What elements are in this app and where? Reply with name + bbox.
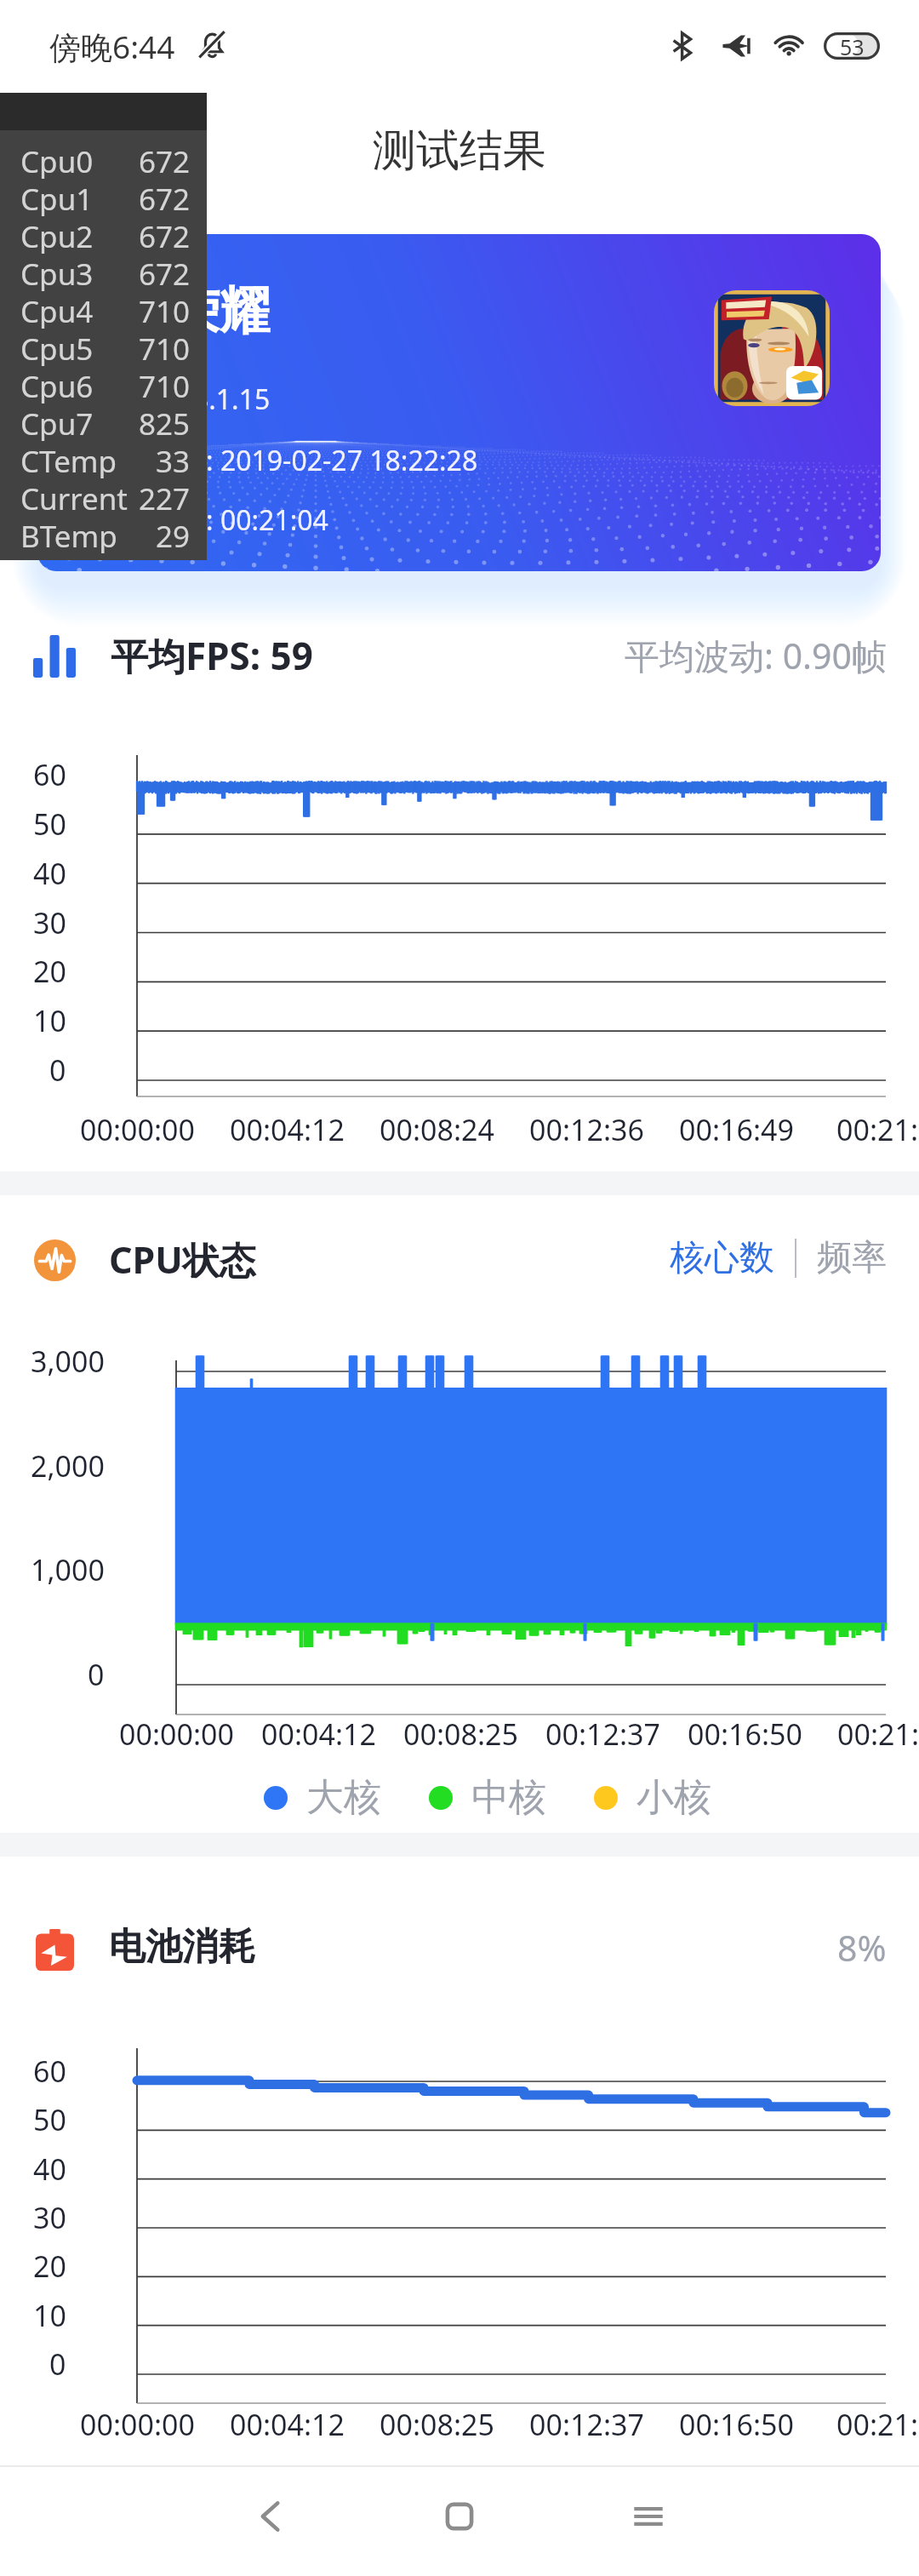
staticText: 00:08:25	[380, 2405, 494, 2444]
staticText: BTemp	[20, 516, 117, 553]
staticText: 平均波动: 0.90帧	[625, 632, 887, 679]
staticText: 29	[156, 516, 191, 553]
staticText: Cpu2	[20, 216, 94, 254]
staticText: 电池消耗	[109, 1924, 255, 1970]
staticText: 00:04:12	[230, 2405, 345, 2444]
staticText: 50	[33, 804, 66, 844]
staticText: 小核	[636, 1774, 711, 1821]
button[interactable]: 中核	[429, 1774, 546, 1821]
staticText: Current	[20, 478, 128, 516]
staticText: 00:04:12	[261, 1714, 376, 1754]
staticText: CPU状态	[109, 1234, 256, 1285]
staticText: 00:16:50	[688, 1714, 802, 1754]
staticText: 672	[139, 179, 191, 216]
staticText: 00:12:36	[529, 1110, 644, 1149]
staticText: 227	[139, 478, 191, 516]
staticText: 10	[33, 2296, 66, 2335]
staticText: 00:16:49	[679, 1110, 794, 1149]
staticText: 30	[33, 2198, 66, 2237]
button[interactable]: Recent apps	[597, 2465, 699, 2567]
staticText: 测试时长: 00:21:04	[97, 501, 328, 539]
staticText: 672	[139, 216, 191, 254]
staticText: 00:16:50	[679, 2405, 794, 2444]
staticText: 版本号: 3.1.15	[97, 381, 271, 418]
button[interactable]: 小核	[594, 1774, 711, 1821]
staticText: 频率	[817, 1236, 887, 1280]
staticText: 00:04:12	[230, 1110, 345, 1149]
staticText: 平均FPS: 59	[111, 630, 313, 681]
staticText: 20	[33, 2247, 66, 2286]
staticText: 0	[88, 1655, 105, 1694]
staticText: 核心数	[670, 1236, 774, 1280]
staticText: 测试结果	[373, 123, 546, 178]
staticText: 20	[33, 952, 66, 991]
staticText: 00:00:00	[80, 1110, 195, 1149]
staticText: 王者荣耀	[66, 279, 271, 344]
staticText: 30	[33, 903, 66, 942]
staticText: 傍晚6:44	[49, 25, 175, 68]
staticText: 40	[33, 854, 66, 893]
staticText: Cpu7	[20, 404, 94, 441]
staticText: Cpu6	[20, 366, 94, 404]
button[interactable]: 核心数	[670, 1236, 774, 1280]
staticText: 3,000	[31, 1342, 105, 1381]
staticText: 1,000	[31, 1550, 105, 1589]
staticText: 00:00:00	[80, 2405, 195, 2444]
staticText: 00:12:37	[529, 2405, 644, 2444]
staticText: 710	[139, 366, 191, 404]
staticText: 710	[139, 291, 191, 329]
staticText: 60	[33, 2052, 66, 2091]
staticText: 50	[33, 2100, 66, 2139]
staticText: 40	[33, 2150, 66, 2189]
staticText: CTemp	[20, 441, 117, 478]
staticText: Cpu0	[20, 141, 94, 179]
staticText: 00:08:25	[403, 1714, 518, 1754]
staticText: Cpu4	[20, 291, 94, 329]
staticText: 672	[139, 254, 191, 291]
staticText: Cpu5	[20, 329, 94, 366]
staticText: 大核	[306, 1774, 381, 1821]
staticText: 00:21:0	[836, 2405, 919, 2444]
staticText: 60	[33, 755, 66, 794]
button[interactable]: Back	[220, 2465, 322, 2567]
staticText: 中核	[471, 1774, 546, 1821]
button[interactable]: 大核	[264, 1774, 381, 1821]
staticText: 00:21:0	[837, 1714, 919, 1754]
staticText: 8%	[837, 1924, 887, 1972]
staticText: 00:00:00	[119, 1714, 234, 1754]
staticText: 00:12:37	[545, 1714, 660, 1754]
staticText: 测试时间: 2019-02-27 18:22:28	[97, 442, 478, 479]
button[interactable]: 频率	[817, 1236, 887, 1280]
staticText: Cpu3	[20, 254, 94, 291]
staticText: 00:08:24	[380, 1110, 494, 1149]
staticText: 672	[139, 141, 191, 179]
button[interactable]: Home	[408, 2465, 511, 2567]
staticText: 33	[156, 441, 191, 478]
staticText: 0	[49, 2344, 66, 2384]
staticText: 2,000	[31, 1446, 105, 1485]
staticText: 53	[840, 32, 865, 60]
staticText: 825	[139, 404, 191, 441]
staticText: 0	[49, 1050, 66, 1090]
staticText: Cpu1	[20, 179, 94, 216]
staticText: 10	[33, 1001, 66, 1040]
staticText: 710	[139, 329, 191, 366]
staticText: 00:21:0	[836, 1110, 919, 1149]
